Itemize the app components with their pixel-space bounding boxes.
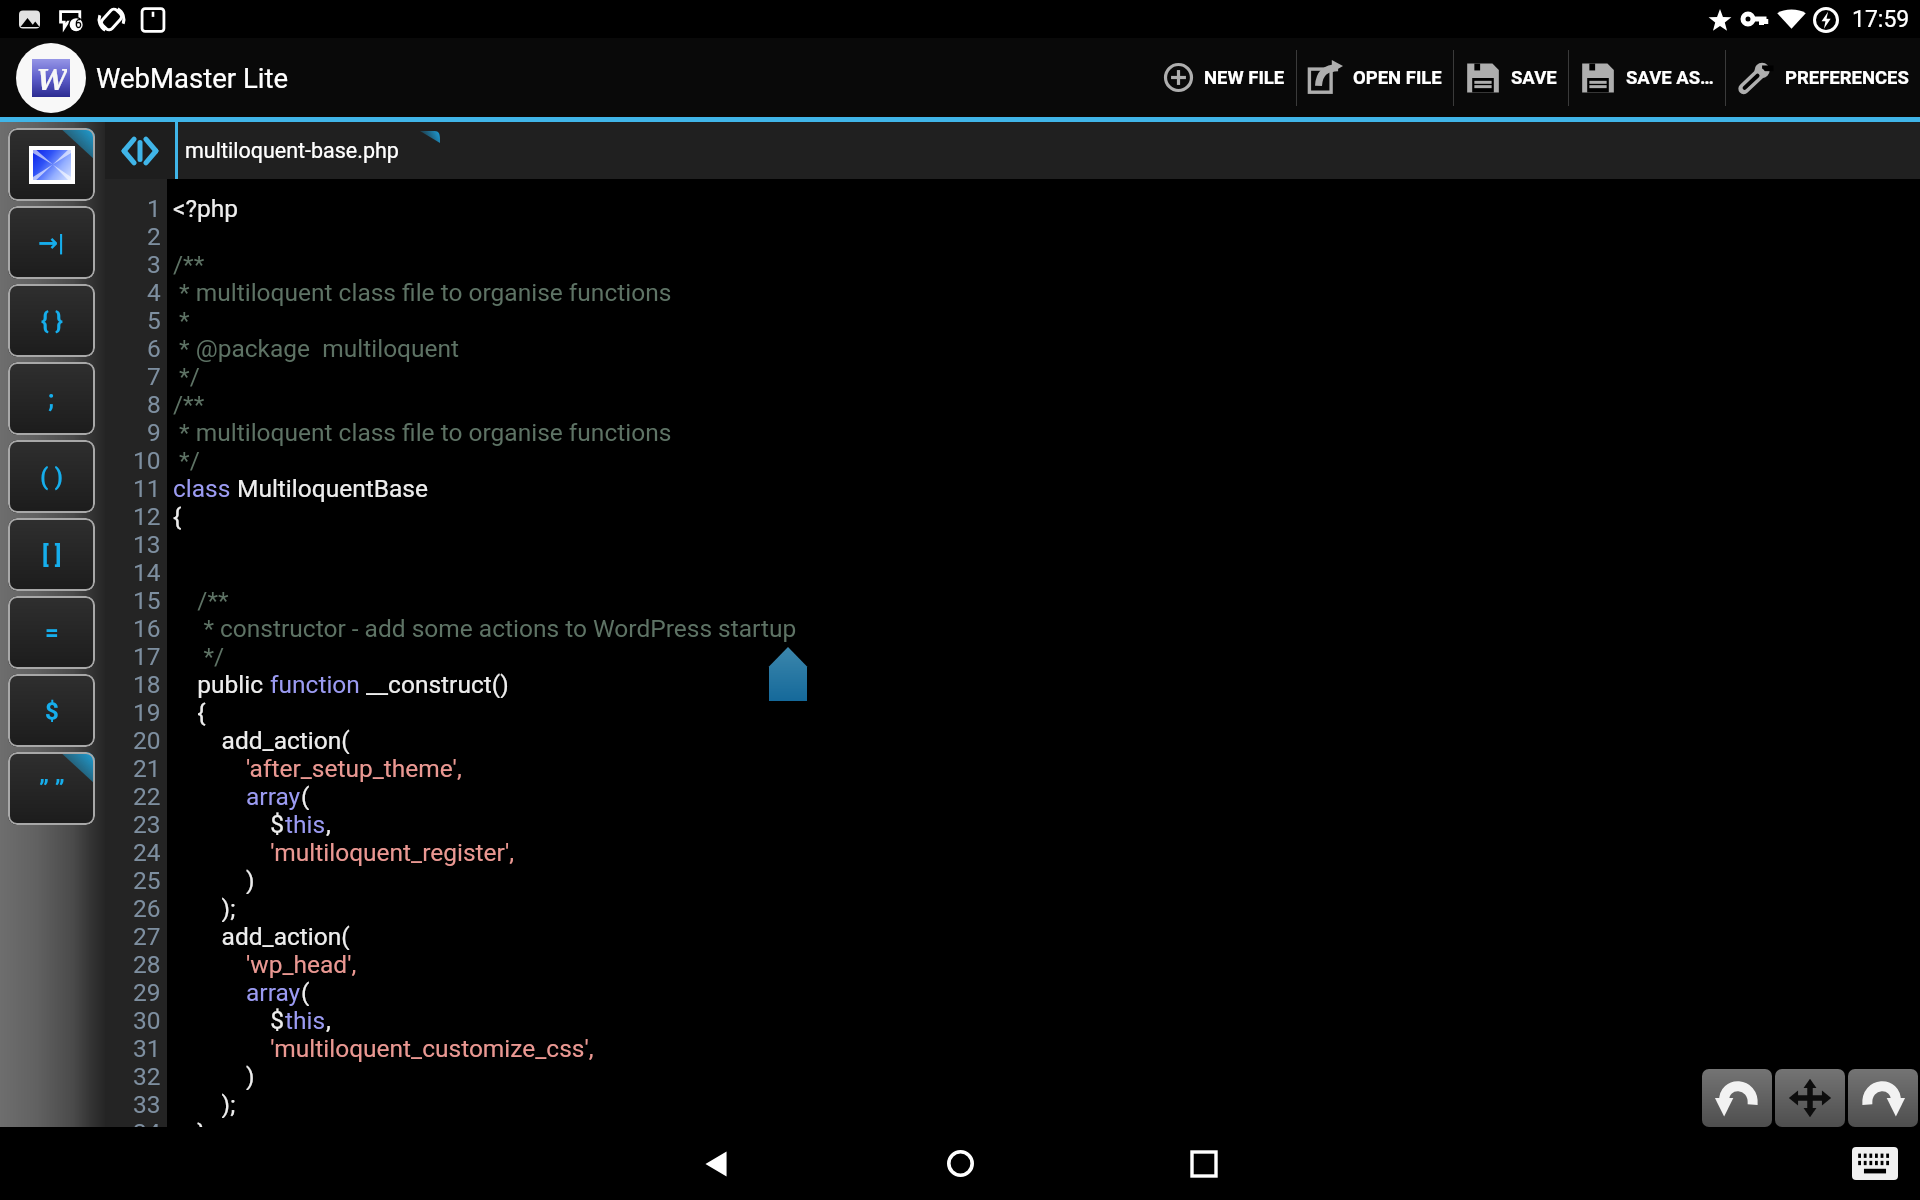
staticText: 17 — [133, 642, 161, 670]
staticText: { — [173, 502, 182, 530]
staticText: = — [45, 619, 59, 647]
staticText: 17:59 — [1852, 6, 1910, 33]
staticText: ( ) — [40, 463, 63, 491]
button[interactable]: NEW FILE — [1152, 38, 1296, 117]
button[interactable]: ( ) — [8, 440, 95, 513]
staticText: * — [173, 306, 190, 334]
button[interactable]: Tab — [8, 206, 95, 279]
staticText: } — [173, 1118, 206, 1127]
button[interactable]: [ ] — [8, 518, 95, 591]
staticText: { — [173, 698, 206, 726]
staticText: 6 — [147, 334, 161, 362]
staticText: 14 — [133, 558, 161, 586]
staticText: ( — [301, 782, 310, 810]
button[interactable]: Undo — [1702, 1069, 1772, 1127]
button[interactable]: ” ” — [8, 752, 95, 825]
staticText: public — [173, 670, 270, 698]
button[interactable]: Insert image — [8, 128, 95, 201]
staticText: 8 — [147, 390, 161, 418]
staticText: 22 — [133, 782, 161, 810]
staticText: array — [246, 782, 301, 810]
staticText: ) — [173, 1062, 255, 1090]
staticText: /** — [173, 390, 205, 418]
staticText: W — [36, 59, 67, 97]
button[interactable]: { } — [8, 284, 95, 357]
staticText: 1 — [147, 194, 161, 222]
staticText: 24 — [133, 838, 161, 866]
staticText: 'multiloquent_register', — [173, 838, 515, 866]
button[interactable]: Keyboard — [1852, 1147, 1898, 1180]
staticText: add_action( — [173, 922, 350, 950]
staticText: $ — [173, 810, 285, 838]
staticText: 23 — [133, 810, 161, 838]
staticText: this — [285, 810, 326, 838]
button[interactable]: Move — [1775, 1069, 1845, 1127]
staticText: 7 — [147, 362, 161, 390]
staticText: * multiloquent class file to organise fu… — [173, 278, 672, 306]
staticText: ; — [48, 385, 55, 413]
staticText: MultiloquentBase — [237, 474, 428, 502]
staticText: 30 — [133, 1006, 161, 1034]
button[interactable]: Recents — [1159, 1127, 1249, 1200]
staticText: multiloquent-base.php — [185, 138, 399, 163]
staticText: * constructor - add some actions to Word… — [173, 614, 797, 642]
staticText: 33 — [133, 1090, 161, 1118]
staticText: array — [246, 978, 301, 1006]
staticText: * multiloquent class file to organise fu… — [173, 418, 672, 446]
button[interactable]: multiloquent-base.php — [178, 122, 1920, 179]
staticText: 13 — [133, 530, 161, 558]
staticText: 20 — [133, 726, 161, 754]
staticText: 12 — [133, 502, 161, 530]
staticText: ); — [173, 1090, 236, 1118]
staticText: 19 — [133, 698, 161, 726]
staticText: 'multiloquent_customize_css', — [173, 1034, 594, 1062]
staticText: */ — [173, 362, 200, 390]
staticText: 16 — [133, 614, 161, 642]
staticText: NEW FILE — [1204, 67, 1285, 89]
button[interactable]: Back — [671, 1127, 761, 1200]
staticText: __construct() — [366, 670, 509, 698]
button[interactable]: $ — [8, 674, 95, 747]
staticText: 18 — [133, 670, 161, 698]
staticText: 31 — [133, 1034, 161, 1062]
staticText: /** — [173, 250, 205, 278]
staticText: 29 — [133, 978, 161, 1006]
staticText: * @package multiloquent — [173, 334, 460, 362]
staticText: this — [285, 1006, 326, 1034]
staticText: <?php — [173, 194, 239, 222]
button[interactable]: ; — [8, 362, 95, 435]
staticText: SAVE — [1511, 67, 1557, 89]
button[interactable]: Redo — [1848, 1069, 1918, 1127]
staticText: 9 — [147, 418, 161, 446]
staticText: 34 — [133, 1118, 161, 1127]
staticText: 25 — [133, 866, 161, 894]
button[interactable]: SAVE AS… — [1569, 38, 1725, 117]
button[interactable]: PREFERENCES — [1726, 38, 1920, 117]
staticText: 2 — [147, 222, 161, 250]
staticText: PREFERENCES — [1785, 67, 1909, 89]
staticText: 4 — [147, 278, 161, 306]
staticText: , — [326, 1006, 331, 1034]
staticText: add_action( — [173, 726, 350, 754]
button[interactable]: App menu — [16, 43, 86, 113]
staticText: 5 — [147, 306, 161, 334]
staticText: 28 — [133, 950, 161, 978]
staticText: class — [173, 474, 237, 502]
button[interactable]: = — [8, 596, 95, 669]
staticText: ) — [173, 866, 255, 894]
button[interactable]: Home — [915, 1127, 1005, 1200]
button[interactable]: SAVE — [1454, 38, 1568, 117]
button[interactable]: Code view — [105, 122, 175, 179]
staticText: $ — [173, 1006, 285, 1034]
staticText: 21 — [133, 754, 161, 782]
staticText: 26 — [133, 894, 161, 922]
staticText: [ ] — [42, 541, 62, 569]
staticText: SAVE AS… — [1626, 67, 1714, 89]
staticText: OPEN FILE — [1353, 67, 1442, 89]
button[interactable]: OPEN FILE — [1297, 38, 1453, 117]
staticText: 10 — [133, 446, 161, 474]
staticText: */ — [173, 446, 200, 474]
staticText: , — [326, 810, 331, 838]
staticText: 3 — [147, 250, 161, 278]
